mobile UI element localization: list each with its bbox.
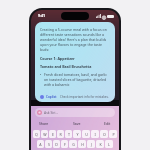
staticText: O <box>103 132 106 137</box>
staticText: R <box>59 132 62 137</box>
button[interactable]: U <box>82 130 90 138</box>
button[interactable]: K <box>96 140 104 148</box>
button[interactable]: Creating a 5-course meal with a focus on… <box>35 22 115 102</box>
staticText: Share <box>39 121 49 126</box>
button[interactable]: A <box>37 140 44 148</box>
button[interactable]: H <box>78 140 86 148</box>
button[interactable]: Share <box>37 120 51 127</box>
staticText: P <box>112 132 115 137</box>
staticText: Course 1: Appetizer <box>40 56 75 61</box>
staticText: Check important info for mistakes. <box>60 95 109 99</box>
staticText: Ask Siri... <box>44 110 59 115</box>
staticText: D <box>55 142 58 147</box>
staticText: I <box>94 132 96 137</box>
button[interactable]: I <box>91 130 99 138</box>
button[interactable]: L <box>105 140 113 148</box>
staticText: S <box>48 142 50 147</box>
button[interactable]: Save <box>71 120 83 127</box>
button[interactable]: R <box>57 130 64 138</box>
button[interactable]: G <box>69 140 77 148</box>
staticText: Edit <box>104 121 111 126</box>
button[interactable]: O <box>100 130 108 138</box>
staticText: U <box>85 132 88 137</box>
staticText: L <box>108 142 110 147</box>
staticText: Save <box>73 121 81 126</box>
button[interactable]: J <box>87 140 95 148</box>
staticText: E <box>52 132 54 137</box>
staticText: • <box>40 72 42 77</box>
button[interactable]: W <box>41 130 48 138</box>
staticText: T <box>68 132 70 137</box>
button[interactable]: T <box>65 130 72 138</box>
button[interactable]: E <box>49 130 56 138</box>
button[interactable]: P <box>109 130 117 138</box>
button[interactable]: Ask Siri... <box>35 108 115 117</box>
staticText: W <box>43 132 47 137</box>
button[interactable]: Edit <box>102 120 113 127</box>
staticText: G <box>72 142 75 147</box>
staticText: Copilot <box>46 95 57 99</box>
staticText: Creating a 5-course meal with a focus on… <box>40 27 110 52</box>
staticText: Fresh diced tomatoes, basil, and garlic … <box>44 72 110 87</box>
button[interactable]: D <box>53 140 60 148</box>
button[interactable]: Y <box>73 130 81 138</box>
staticText: K <box>99 142 102 147</box>
button[interactable]: S <box>45 140 52 148</box>
button[interactable]: F <box>61 140 68 148</box>
button[interactable]: Q <box>33 130 40 138</box>
staticText: J <box>91 142 92 147</box>
staticText: F <box>64 142 66 147</box>
staticText: H <box>81 142 84 147</box>
staticText: 9:41 <box>38 13 46 18</box>
staticText: Tomato and Basil Bruschetta <box>40 64 92 69</box>
staticText: Y <box>76 132 79 137</box>
staticText: A <box>39 142 42 147</box>
staticText: Q <box>35 132 38 137</box>
